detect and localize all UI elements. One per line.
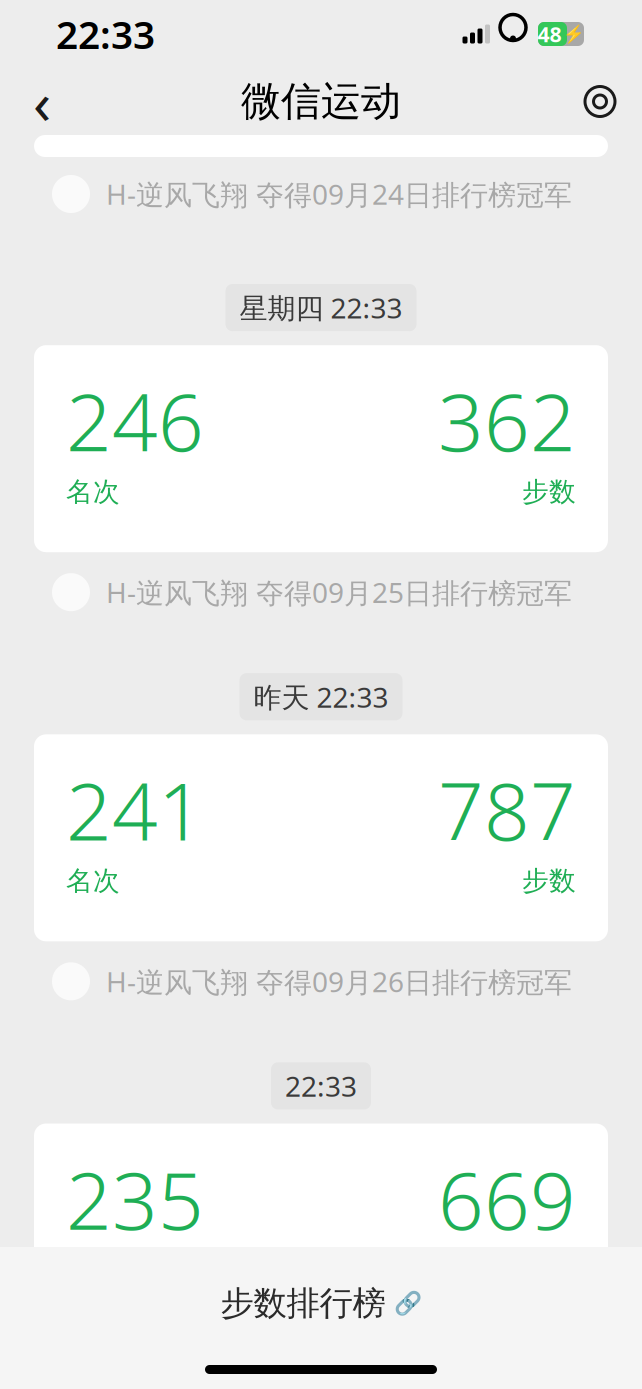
staticText: 步数排行榜 [220,1283,385,1324]
staticText: H-逆风飞翔 夺得09月24日排行榜冠军 [106,175,572,213]
staticText: 669 [438,1145,576,1252]
staticText: 246 [66,367,204,473]
staticText: 362 [438,367,576,473]
staticText: H-逆风飞翔 夺得09月26日排行榜冠军 [106,963,572,1000]
staticText: 22:33 [56,8,155,60]
staticText: Sj🚲中通 夺得09月27日排行榜冠军 [106,1352,543,1389]
button[interactable]: Back [14,73,70,129]
staticText: 241 [66,756,204,863]
staticText: 星期四 22:33 [239,289,402,326]
staticText: 787 [438,756,576,863]
staticText: 步数 [522,865,576,897]
staticText: 名次 [66,865,120,897]
staticText: 步数 [522,475,576,508]
staticText: 名次 [66,475,120,508]
staticText: 微信运动 [241,77,401,126]
staticText: H-逆风飞翔 夺得09月25日排行榜冠军 [106,573,572,611]
staticText: 昨天 22:33 [253,678,388,715]
button[interactable]: Settings [572,73,628,129]
staticText: ‹ [33,62,51,140]
button[interactable]: 步数排行榜 [0,1247,642,1389]
staticText: 🔗 [393,1290,421,1316]
staticText: 22:33 [285,1067,357,1104]
staticText: 48 [537,20,561,48]
staticText: ⚡ [562,24,584,44]
staticText: 235 [66,1145,204,1252]
